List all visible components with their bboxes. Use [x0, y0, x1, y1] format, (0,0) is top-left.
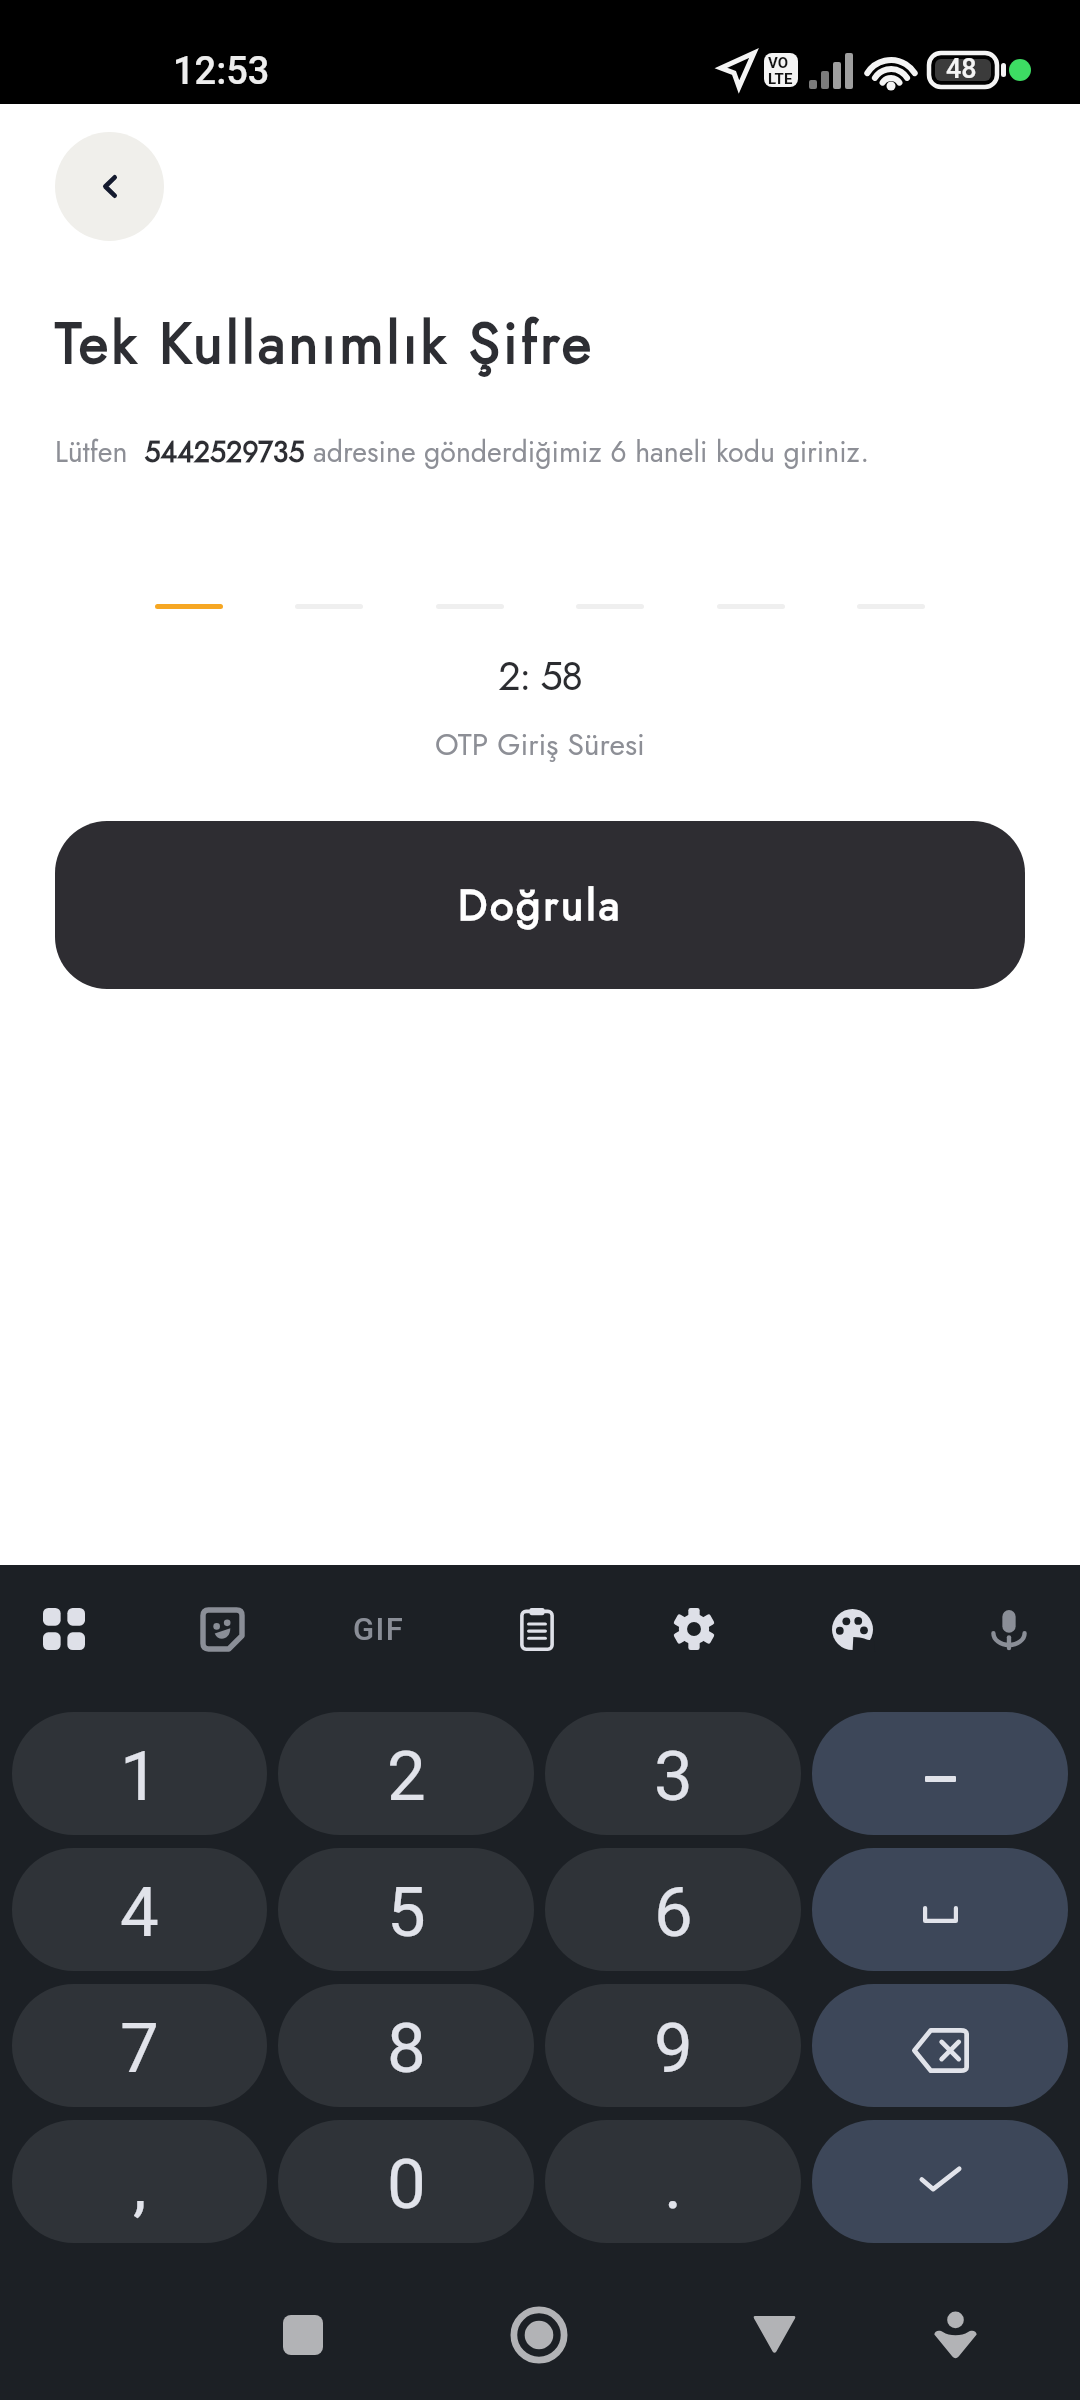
staticText: OTP Giriş Süresi	[435, 723, 645, 766]
staticText: Doğrula	[458, 874, 623, 936]
button[interactable]: del	[812, 1984, 1068, 2107]
staticText: 8	[387, 2008, 426, 2089]
button[interactable]: Apps	[14, 1574, 114, 1684]
button[interactable]: space	[812, 1848, 1068, 1971]
staticText: 7	[120, 2008, 159, 2089]
button[interactable]: GIF	[329, 1574, 429, 1684]
button[interactable]: Stickers	[172, 1574, 272, 1684]
button[interactable]: Home	[489, 2250, 589, 2400]
staticText: 2: 58	[498, 647, 582, 705]
staticText: 4	[120, 1872, 159, 1953]
staticText: 3	[654, 1736, 693, 1817]
button[interactable]: Theme	[802, 1574, 902, 1684]
button[interactable]	[155, 604, 223, 609]
staticText: Lütfen 5442529735 adresine gönderdiğimiz…	[55, 432, 870, 473]
button[interactable]: Back	[724, 2250, 824, 2400]
staticText: ,	[133, 2144, 147, 2225]
button[interactable]: 1	[12, 1712, 267, 1835]
button[interactable]: Voice input	[959, 1574, 1059, 1684]
button[interactable]: ok	[812, 2120, 1068, 2243]
button[interactable]: 5	[278, 1848, 534, 1971]
staticText: 0	[387, 2144, 426, 2225]
button[interactable]: Hide keyboard	[905, 2250, 1005, 2400]
button[interactable]: 0	[278, 2120, 534, 2243]
button[interactable]: Doğrula	[55, 821, 1025, 989]
staticText: 9	[654, 2008, 693, 2089]
button[interactable]: 6	[545, 1848, 801, 1971]
staticText: 1	[120, 1736, 159, 1817]
button[interactable]: 3	[545, 1712, 801, 1835]
staticText: GIF	[353, 1611, 405, 1647]
button[interactable]: 9	[545, 1984, 801, 2107]
button[interactable]: Clipboard	[487, 1574, 587, 1684]
staticText: .	[664, 2144, 683, 2225]
button[interactable]: Recents	[253, 2250, 353, 2400]
button[interactable]: 4	[12, 1848, 267, 1971]
button[interactable]: .	[545, 2120, 801, 2243]
staticText: Tek Kullanımlık Şifre	[55, 302, 595, 384]
staticText: 6	[654, 1872, 693, 1953]
staticText: 2	[387, 1736, 426, 1817]
button[interactable]: ,	[12, 2120, 267, 2243]
staticText: 12:53	[173, 49, 270, 94]
staticText: VO LTE	[768, 54, 793, 87]
button[interactable]: Settings	[644, 1574, 744, 1684]
button[interactable]: 8	[278, 1984, 534, 2107]
button[interactable]: 2	[278, 1712, 534, 1835]
button[interactable]: Back	[55, 132, 164, 241]
staticText: 48	[946, 53, 977, 85]
button[interactable]: minus	[812, 1712, 1068, 1835]
button[interactable]: 7	[12, 1984, 267, 2107]
staticText: 5	[387, 1872, 426, 1953]
